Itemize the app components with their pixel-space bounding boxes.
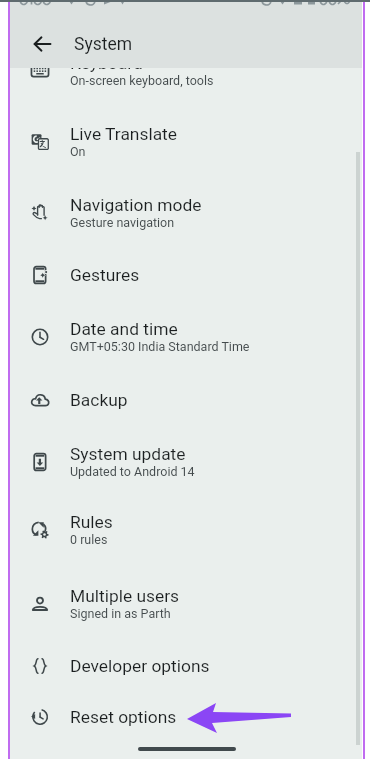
button[interactable]: Date and time (10, 301, 362, 372)
staticText: Date and time (70, 319, 178, 339)
button[interactable]: Reset options (10, 691, 362, 743)
staticText: System update (70, 444, 186, 464)
staticText: On-screen keyboard, tools (70, 73, 214, 88)
staticText: Backup (70, 390, 128, 410)
button[interactable]: Rules (10, 494, 362, 565)
staticText: Navigation mode (70, 195, 202, 215)
staticText: GMT+05:30 India Standard Time (70, 339, 250, 354)
button[interactable]: Gestures (10, 249, 362, 301)
staticText: Updated to Android 14 (70, 464, 195, 479)
staticText: Gestures (70, 265, 140, 285)
button[interactable]: Live Translate (10, 106, 362, 177)
staticText: Rules (70, 512, 113, 532)
staticText: Developer options (70, 656, 210, 676)
staticText: 0 rules (70, 532, 108, 547)
button[interactable]: Multiple users (10, 568, 362, 639)
button[interactable]: System update (10, 426, 362, 497)
button[interactable]: Backup (10, 374, 362, 426)
staticText: Keyboard (70, 53, 143, 73)
staticText: Gesture navigation (70, 215, 175, 230)
staticText: Signed in as Parth (70, 606, 171, 621)
staticText: On (70, 144, 86, 159)
button[interactable]: Developer options (10, 640, 362, 692)
button[interactable]: Navigation mode (10, 177, 362, 248)
staticText: Multiple users (70, 586, 180, 606)
button[interactable]: Keyboard (10, 35, 362, 106)
staticText: System (74, 34, 133, 55)
staticText: Live Translate (70, 124, 178, 144)
button[interactable]: Back (19, 20, 67, 68)
staticText: Reset options (70, 707, 177, 727)
